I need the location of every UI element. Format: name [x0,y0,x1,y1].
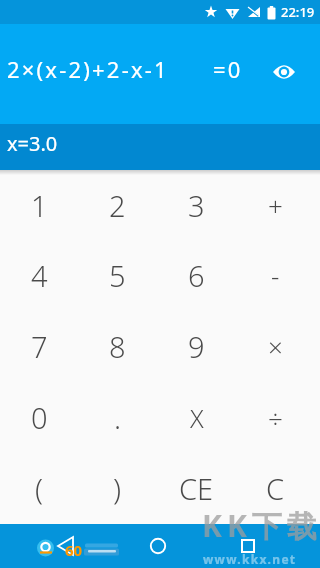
button[interactable]: ÷ [236,382,315,453]
staticText: 4 [31,256,48,295]
staticText: 60 [65,540,83,560]
button[interactable]: 1 [0,170,78,240]
button[interactable] [134,524,182,568]
staticText: ( [35,469,44,508]
staticText: x=3.0 [7,130,58,157]
staticText: CE [179,469,214,508]
staticText: 2 [109,186,126,225]
staticText: - [271,258,280,293]
staticText: 7 [31,327,48,366]
staticText: C [266,469,285,508]
button[interactable]: 2 [78,170,157,240]
button[interactable]: 0 [0,382,78,453]
staticText: 6 [188,256,205,295]
button[interactable]: - [236,240,315,311]
button[interactable]: 5 [78,240,157,311]
staticText: + [268,188,283,223]
button[interactable]: × [236,311,315,382]
button[interactable]: 9 [157,311,236,382]
button[interactable]: 6 [157,240,236,311]
staticText: 9 [188,327,205,366]
button[interactable]: 7 [0,311,78,382]
staticText: www.kkx.net [203,551,297,567]
button[interactable] [272,60,296,84]
button[interactable]: + [236,170,315,240]
staticText: . [114,398,122,437]
staticText: 0 [31,398,48,437]
button[interactable]: ) [78,453,157,524]
staticText: KK下载 [202,505,320,546]
button[interactable]: 8 [78,311,157,382]
button[interactable]: . [78,382,157,453]
staticText: ÷ [268,400,283,435]
button[interactable] [42,524,90,568]
staticText: 8 [109,327,126,366]
staticText: 3 [188,186,205,225]
staticText: 5 [109,256,126,295]
button[interactable]: 3 [157,170,236,240]
staticText: X [190,401,204,435]
staticText: =0 [213,54,243,84]
staticText: 22:19 [281,3,315,21]
button[interactable]: C [236,453,315,524]
button[interactable]: X [157,382,236,453]
staticText: ) [113,469,122,508]
staticText: 1 [31,186,48,225]
button[interactable]: 4 [0,240,78,311]
button[interactable] [224,524,272,568]
staticText: 2×(x-2)+2-x-1 [7,54,169,84]
button[interactable]: ( [0,453,78,524]
staticText: × [268,329,283,364]
button[interactable]: CE [157,453,236,524]
